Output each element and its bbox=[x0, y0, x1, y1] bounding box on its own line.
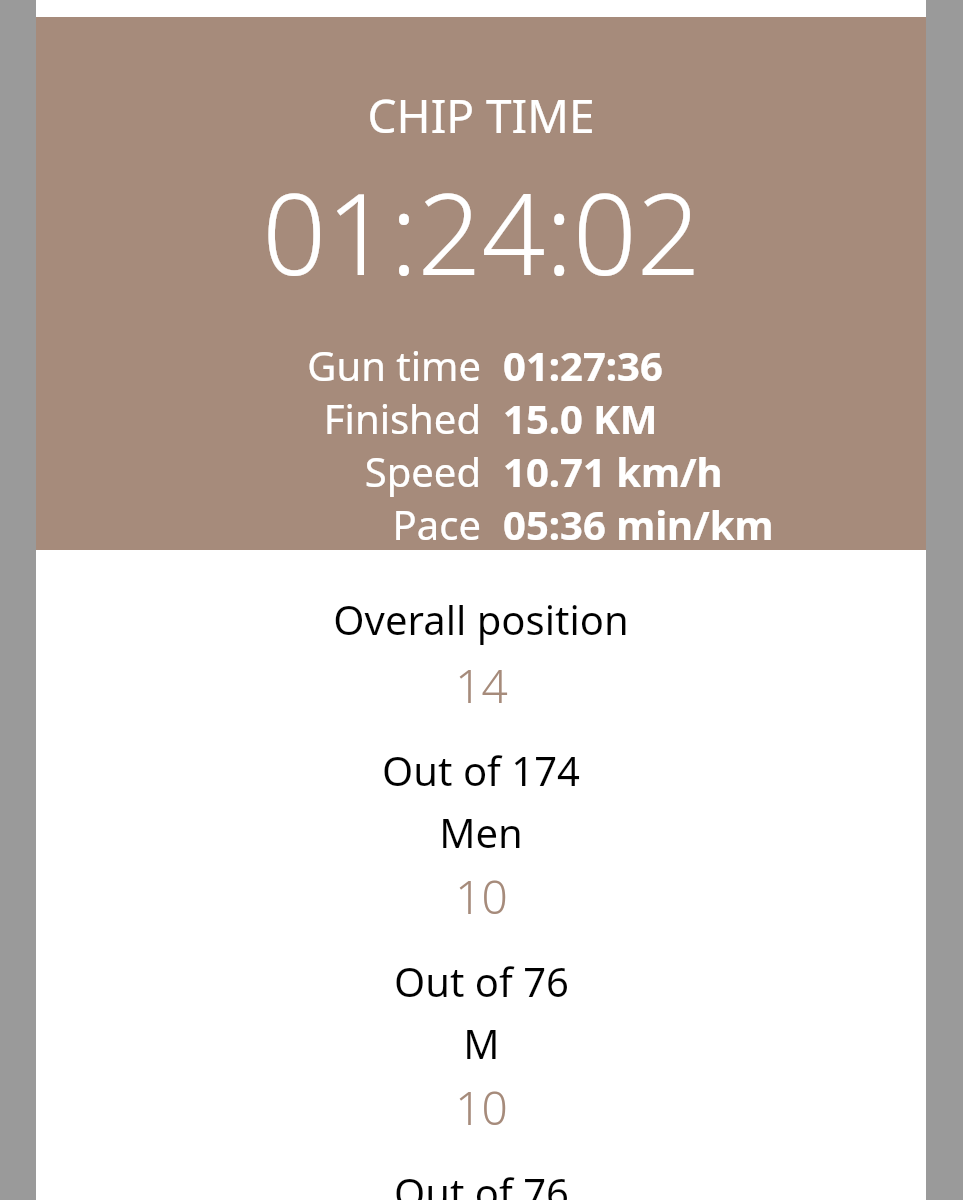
staticText: Pace bbox=[392, 497, 481, 550]
button[interactable]: 14 bbox=[36, 654, 926, 717]
staticText: Speed bbox=[364, 444, 481, 497]
button[interactable]: CHIP TIME bbox=[36, 84, 926, 147]
button[interactable]: Out of 76 bbox=[36, 1165, 926, 1200]
staticText: Out of 76 bbox=[394, 1165, 569, 1200]
button[interactable]: Pace bbox=[36, 497, 926, 550]
staticText: 05:36 min/km bbox=[503, 497, 774, 550]
button[interactable]: Overall position bbox=[36, 592, 926, 646]
button[interactable]: 01:24:02 bbox=[36, 155, 926, 308]
staticText: Out of 76 bbox=[394, 954, 569, 1008]
staticText: 14 bbox=[455, 654, 508, 717]
button[interactable]: Speed bbox=[36, 444, 926, 497]
staticText: 01:24:02 bbox=[262, 155, 701, 308]
button[interactable]: Men bbox=[36, 805, 926, 859]
staticText: 15.0 KM bbox=[503, 391, 658, 444]
staticText: Out of 174 bbox=[382, 743, 580, 797]
staticText: Gun time bbox=[307, 338, 481, 391]
button[interactable]: M bbox=[36, 1016, 926, 1070]
staticText: Overall position bbox=[333, 592, 629, 646]
staticText: 10 bbox=[455, 865, 508, 928]
staticText: 10 bbox=[455, 1076, 508, 1139]
button[interactable]: Out of 76 bbox=[36, 954, 926, 1008]
staticText: CHIP TIME bbox=[367, 84, 595, 147]
button[interactable]: Out of 174 bbox=[36, 743, 926, 797]
button[interactable]: Gun time bbox=[36, 338, 926, 391]
staticText: 01:27:36 bbox=[503, 338, 663, 391]
button[interactable]: Finished bbox=[36, 391, 926, 444]
staticText: M bbox=[463, 1016, 500, 1070]
staticText: Finished bbox=[323, 391, 481, 444]
button[interactable]: 10 bbox=[36, 865, 926, 928]
staticText: 10.71 km/h bbox=[503, 444, 723, 497]
button[interactable]: 10 bbox=[36, 1076, 926, 1139]
staticText: Men bbox=[439, 805, 523, 859]
